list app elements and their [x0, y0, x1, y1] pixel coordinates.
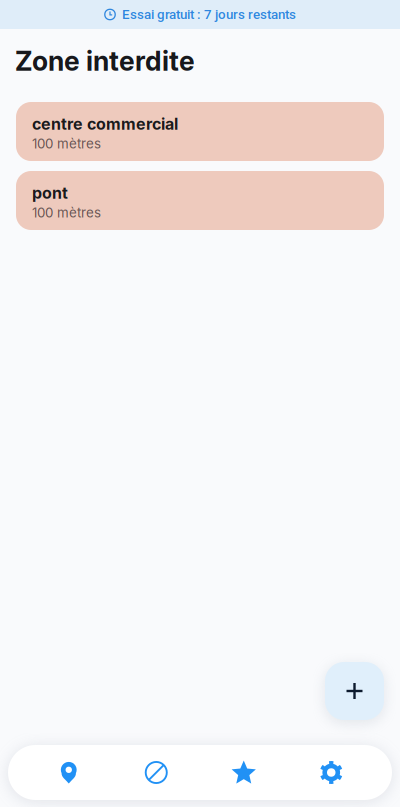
button[interactable]: centre commercial [16, 102, 384, 161]
staticText: centre commercial [32, 114, 178, 134]
staticText: Zone interdite [15, 45, 195, 77]
button[interactable]: Favoris [200, 745, 287, 800]
button[interactable]: Carte [25, 745, 112, 800]
button[interactable]: Réglages [287, 745, 375, 800]
staticText: 100 mètres [32, 136, 101, 152]
staticText: Essai gratuit : 7 jours restants [122, 7, 296, 22]
staticText: pont [32, 183, 68, 203]
button[interactable]: Zones interdites [112, 745, 200, 800]
button[interactable]: pont [16, 171, 384, 230]
button[interactable]: Ajouter une zone [325, 662, 384, 720]
staticText: 100 mètres [32, 205, 101, 221]
